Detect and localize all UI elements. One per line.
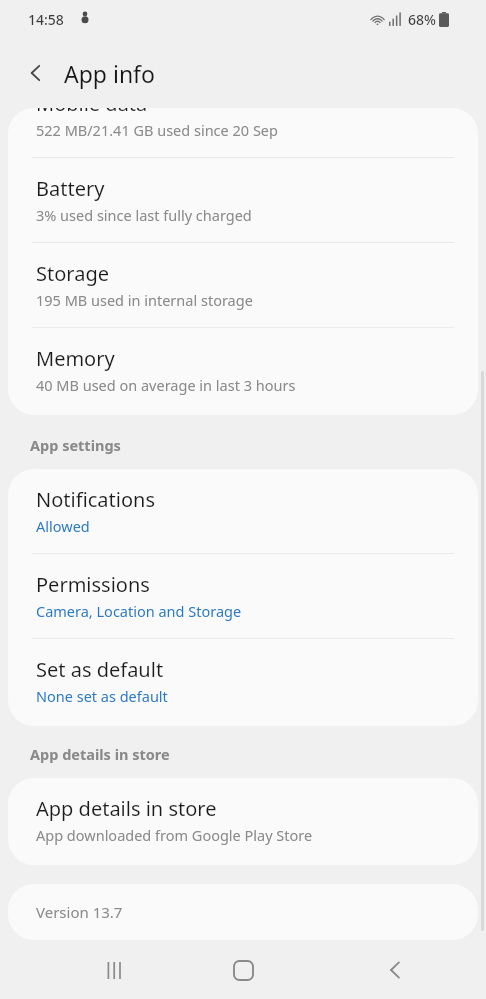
button[interactable]: Storage	[8, 243, 478, 327]
staticText: 3% used since last fully charged	[36, 205, 252, 225]
button[interactable]: Mobile data	[8, 108, 478, 157]
staticText: Storage	[36, 260, 109, 287]
button[interactable]: App details in store	[8, 778, 478, 865]
staticText: 40 MB used on average in last 3 hours	[36, 375, 296, 395]
button[interactable]: Home	[219, 946, 267, 994]
button[interactable]: Set as default	[8, 639, 478, 726]
staticText: 195 MB used in internal storage	[36, 290, 253, 310]
staticText: Set as default	[36, 656, 164, 683]
staticText: Mobile data	[36, 108, 148, 117]
staticText: Version 13.7	[36, 902, 123, 922]
staticText: Camera, Location and Storage	[36, 601, 242, 621]
button[interactable]: Recent apps	[91, 946, 139, 994]
button[interactable]: Version 13.7	[8, 884, 478, 940]
staticText: 14:58	[28, 10, 64, 29]
button[interactable]: Permissions	[8, 554, 478, 638]
staticText: 68%	[408, 10, 436, 29]
staticText: Notifications	[36, 486, 155, 513]
staticText: 522 MB/21.41 GB used since 20 Sep	[36, 120, 278, 139]
staticText: Allowed	[36, 516, 90, 536]
staticText: App settings	[30, 435, 121, 455]
staticText: App details in store	[36, 795, 217, 822]
button[interactable]: Battery	[8, 158, 478, 242]
button[interactable]: Back	[14, 51, 58, 95]
staticText: Battery	[36, 175, 105, 202]
staticText: Memory	[36, 345, 115, 372]
button[interactable]: Back	[371, 946, 419, 994]
staticText: App downloaded from Google Play Store	[36, 825, 313, 845]
staticText: Permissions	[36, 571, 150, 598]
staticText: None set as default	[36, 686, 168, 706]
staticText: App info	[64, 58, 155, 89]
staticText: App details in store	[30, 744, 170, 764]
button[interactable]: Memory	[8, 328, 478, 415]
button[interactable]: Notifications	[8, 469, 478, 553]
